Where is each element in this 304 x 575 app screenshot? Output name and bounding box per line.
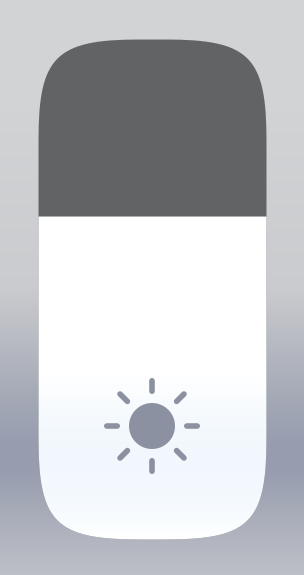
button[interactable]: Brightness (38, 39, 266, 539)
